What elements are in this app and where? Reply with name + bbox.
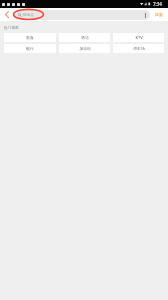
staticText: 停车场: [133, 46, 145, 51]
button[interactable]: 银行: [4, 44, 56, 53]
staticText: 加油站: [79, 46, 91, 51]
staticText: 热门搜索: [4, 25, 19, 30]
staticText: 搜索: [155, 12, 163, 17]
button[interactable]: 停车场: [113, 44, 164, 53]
staticText: 搜地点: [23, 13, 34, 18]
button[interactable]: 搜索: [150, 8, 168, 21]
staticText: 酒店: [81, 35, 89, 40]
staticText: 银行: [26, 46, 34, 51]
button[interactable]: 酒店: [59, 33, 110, 42]
button[interactable]: Back: [0, 8, 14, 21]
button[interactable]: KTV: [113, 33, 164, 42]
staticText: 美食: [26, 35, 34, 40]
button[interactable]: 搜地点: [14, 10, 150, 20]
button[interactable]: 加油站: [59, 44, 110, 53]
staticText: KTV: [135, 35, 143, 40]
button[interactable]: 美食: [4, 33, 56, 42]
staticText: 7:34: [153, 1, 162, 7]
